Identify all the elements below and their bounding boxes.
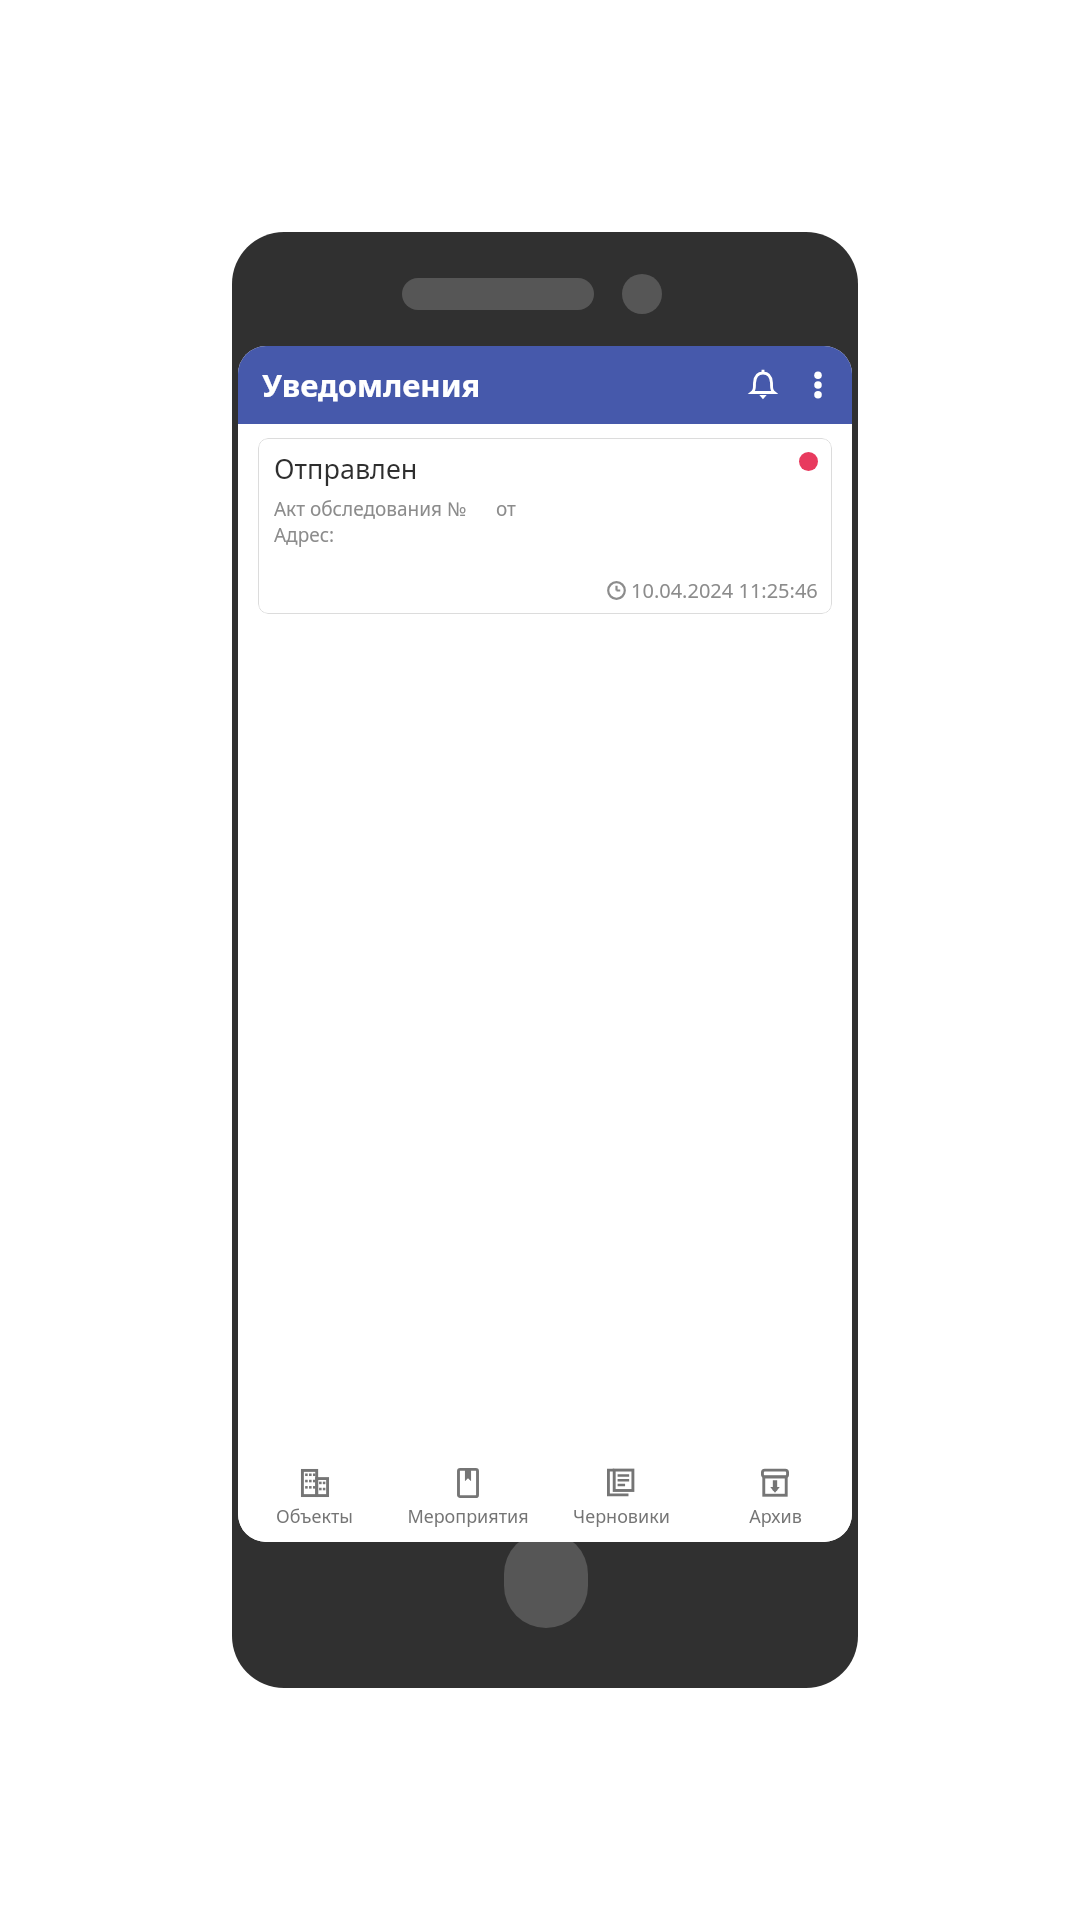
staticText: Акт обследования № от [274,496,516,522]
staticText: Уведомления [262,364,481,406]
button[interactable]: Notifications [734,356,792,414]
button[interactable]: Отправлен [258,438,832,614]
staticText: Мероприятия [407,1504,529,1529]
staticText: Адрес: [274,522,335,548]
staticText: 10.04.2024 11:25:46 [631,577,818,604]
staticText: Черновики [573,1504,670,1529]
staticText: Отправлен [274,450,418,487]
button[interactable]: Архив [698,1456,852,1542]
button[interactable]: Черновики [544,1456,698,1542]
staticText: Архив [749,1504,802,1529]
staticText: Объекты [276,1504,353,1529]
button[interactable]: Мероприятия [391,1456,544,1542]
button[interactable]: More options [792,359,844,411]
button[interactable]: Объекты [238,1456,391,1542]
